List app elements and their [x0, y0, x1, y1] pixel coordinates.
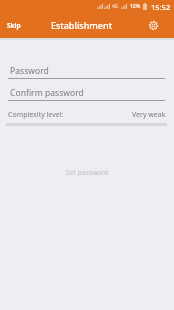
staticText: Confirm password [10, 87, 84, 99]
staticText: Skip [7, 21, 21, 30]
staticText: Set password [66, 168, 109, 177]
staticText: Password [10, 65, 49, 77]
staticText: 15:52 [151, 2, 171, 12]
staticText: 4G [112, 3, 119, 10]
button[interactable]: Skip [0, 17, 27, 34]
staticText: Very weak [132, 110, 166, 120]
button[interactable]: Settings [136, 12, 174, 38]
staticText: 12% [130, 3, 141, 10]
staticText: Complexity level: [8, 110, 64, 120]
staticText: Establishment [27, 19, 136, 31]
button[interactable]: Set password [7, 160, 167, 184]
